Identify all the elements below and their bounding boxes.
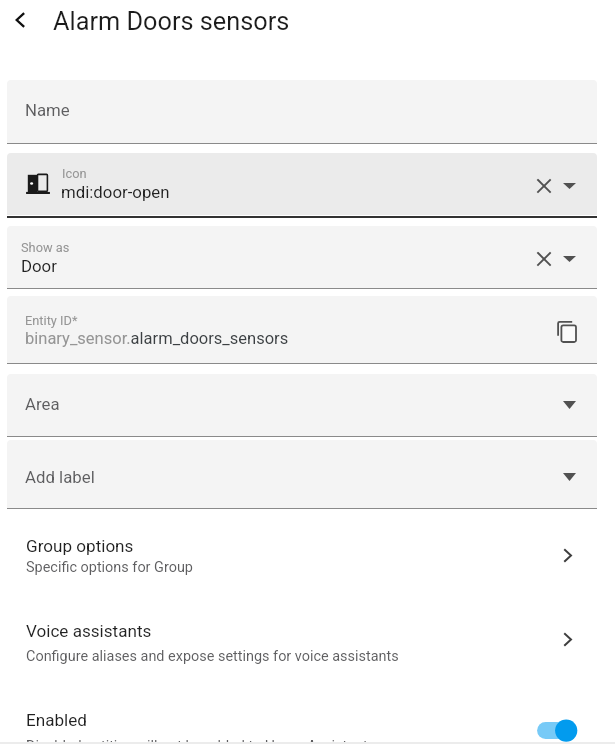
staticText: Disabled entities will not be added to H… <box>26 738 368 750</box>
button[interactable]: Add label <box>7 440 597 508</box>
staticText: Door <box>21 256 57 276</box>
staticText: Icon <box>62 166 87 181</box>
button[interactable]: Group options <box>0 511 615 595</box>
button[interactable]: Entity ID* <box>7 296 597 363</box>
button[interactable]: Select area <box>556 392 582 418</box>
button[interactable]: Enabled <box>0 683 615 750</box>
button[interactable]: Voice assistants <box>0 595 615 683</box>
button[interactable]: Clear show as <box>531 246 557 272</box>
button[interactable]: Name <box>7 80 597 143</box>
staticText: Alarm Doors sensors <box>53 7 290 37</box>
staticText: mdi:door-open <box>61 182 170 202</box>
button[interactable]: Add label <box>556 464 582 490</box>
staticText: binary_sensor.alarm_doors_sensors <box>25 329 289 348</box>
button[interactable]: Clear icon <box>531 173 557 199</box>
staticText: Voice assistants <box>26 621 152 641</box>
staticText: Group options <box>26 536 134 556</box>
staticText: Specific options for Group <box>26 559 193 576</box>
staticText: Entity ID* <box>25 313 78 328</box>
button[interactable]: Enabled, on <box>530 713 586 749</box>
staticText: Show as <box>21 240 70 255</box>
button[interactable]: Show icon suggestions <box>556 173 582 199</box>
staticText: Configure aliases and expose settings fo… <box>26 648 399 665</box>
button[interactable]: Navigate back <box>4 4 36 36</box>
button[interactable]: Show as <box>7 226 597 288</box>
button[interactable]: Area <box>7 374 597 436</box>
staticText: Enabled <box>26 710 87 730</box>
staticText: Add label <box>25 467 95 487</box>
button[interactable]: Show as options <box>556 246 582 272</box>
staticText: Area <box>25 394 60 414</box>
button[interactable]: Copy entity ID <box>553 317 583 347</box>
staticText: Name <box>25 100 70 120</box>
button[interactable]: Icon <box>7 153 597 215</box>
